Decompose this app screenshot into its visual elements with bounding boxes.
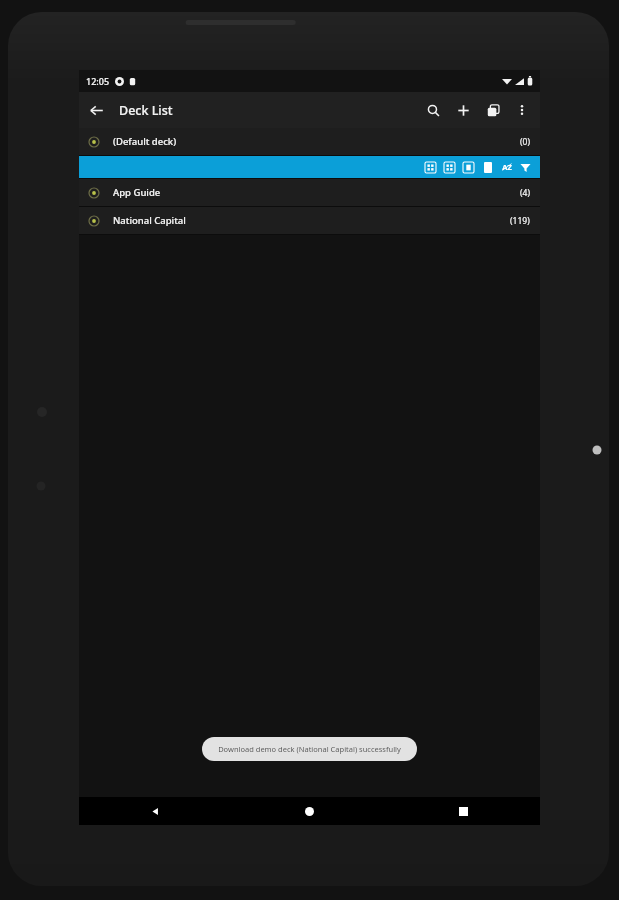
staticText: (4)	[520, 187, 530, 199]
button[interactable]: Back	[79, 797, 232, 825]
staticText: Download demo deck (National Capital) su…	[218, 744, 401, 754]
staticText: (119)	[510, 215, 530, 227]
button[interactable]: Filter	[516, 156, 535, 178]
button[interactable]: National Capital	[79, 207, 540, 234]
button[interactable]: Back	[79, 93, 113, 127]
button[interactable]: More options	[508, 96, 536, 124]
staticText: AZ	[502, 162, 512, 172]
button[interactable]: Grid view	[421, 156, 440, 178]
button[interactable]: Card preview	[459, 156, 478, 178]
staticText: (Default deck)	[113, 135, 177, 148]
button[interactable]: (Default deck)	[79, 128, 540, 155]
button[interactable]: Search	[418, 95, 448, 125]
button[interactable]: Card browser	[478, 95, 508, 125]
staticText: National Capital	[113, 214, 186, 227]
button[interactable]: Sort A to Z	[497, 156, 516, 178]
button[interactable]: Home	[232, 797, 386, 825]
staticText: App Guide	[113, 186, 161, 199]
button[interactable]: Grid view	[79, 156, 540, 178]
button[interactable]: App Guide	[79, 179, 540, 206]
button[interactable]: Grid small	[440, 156, 459, 178]
staticText: Deck List	[119, 102, 173, 119]
staticText: (0)	[520, 136, 530, 148]
staticText: 12:05	[86, 75, 110, 87]
button[interactable]: Add deck	[448, 95, 478, 125]
button[interactable]: Recent apps	[386, 797, 540, 825]
button[interactable]: Note	[478, 156, 497, 178]
